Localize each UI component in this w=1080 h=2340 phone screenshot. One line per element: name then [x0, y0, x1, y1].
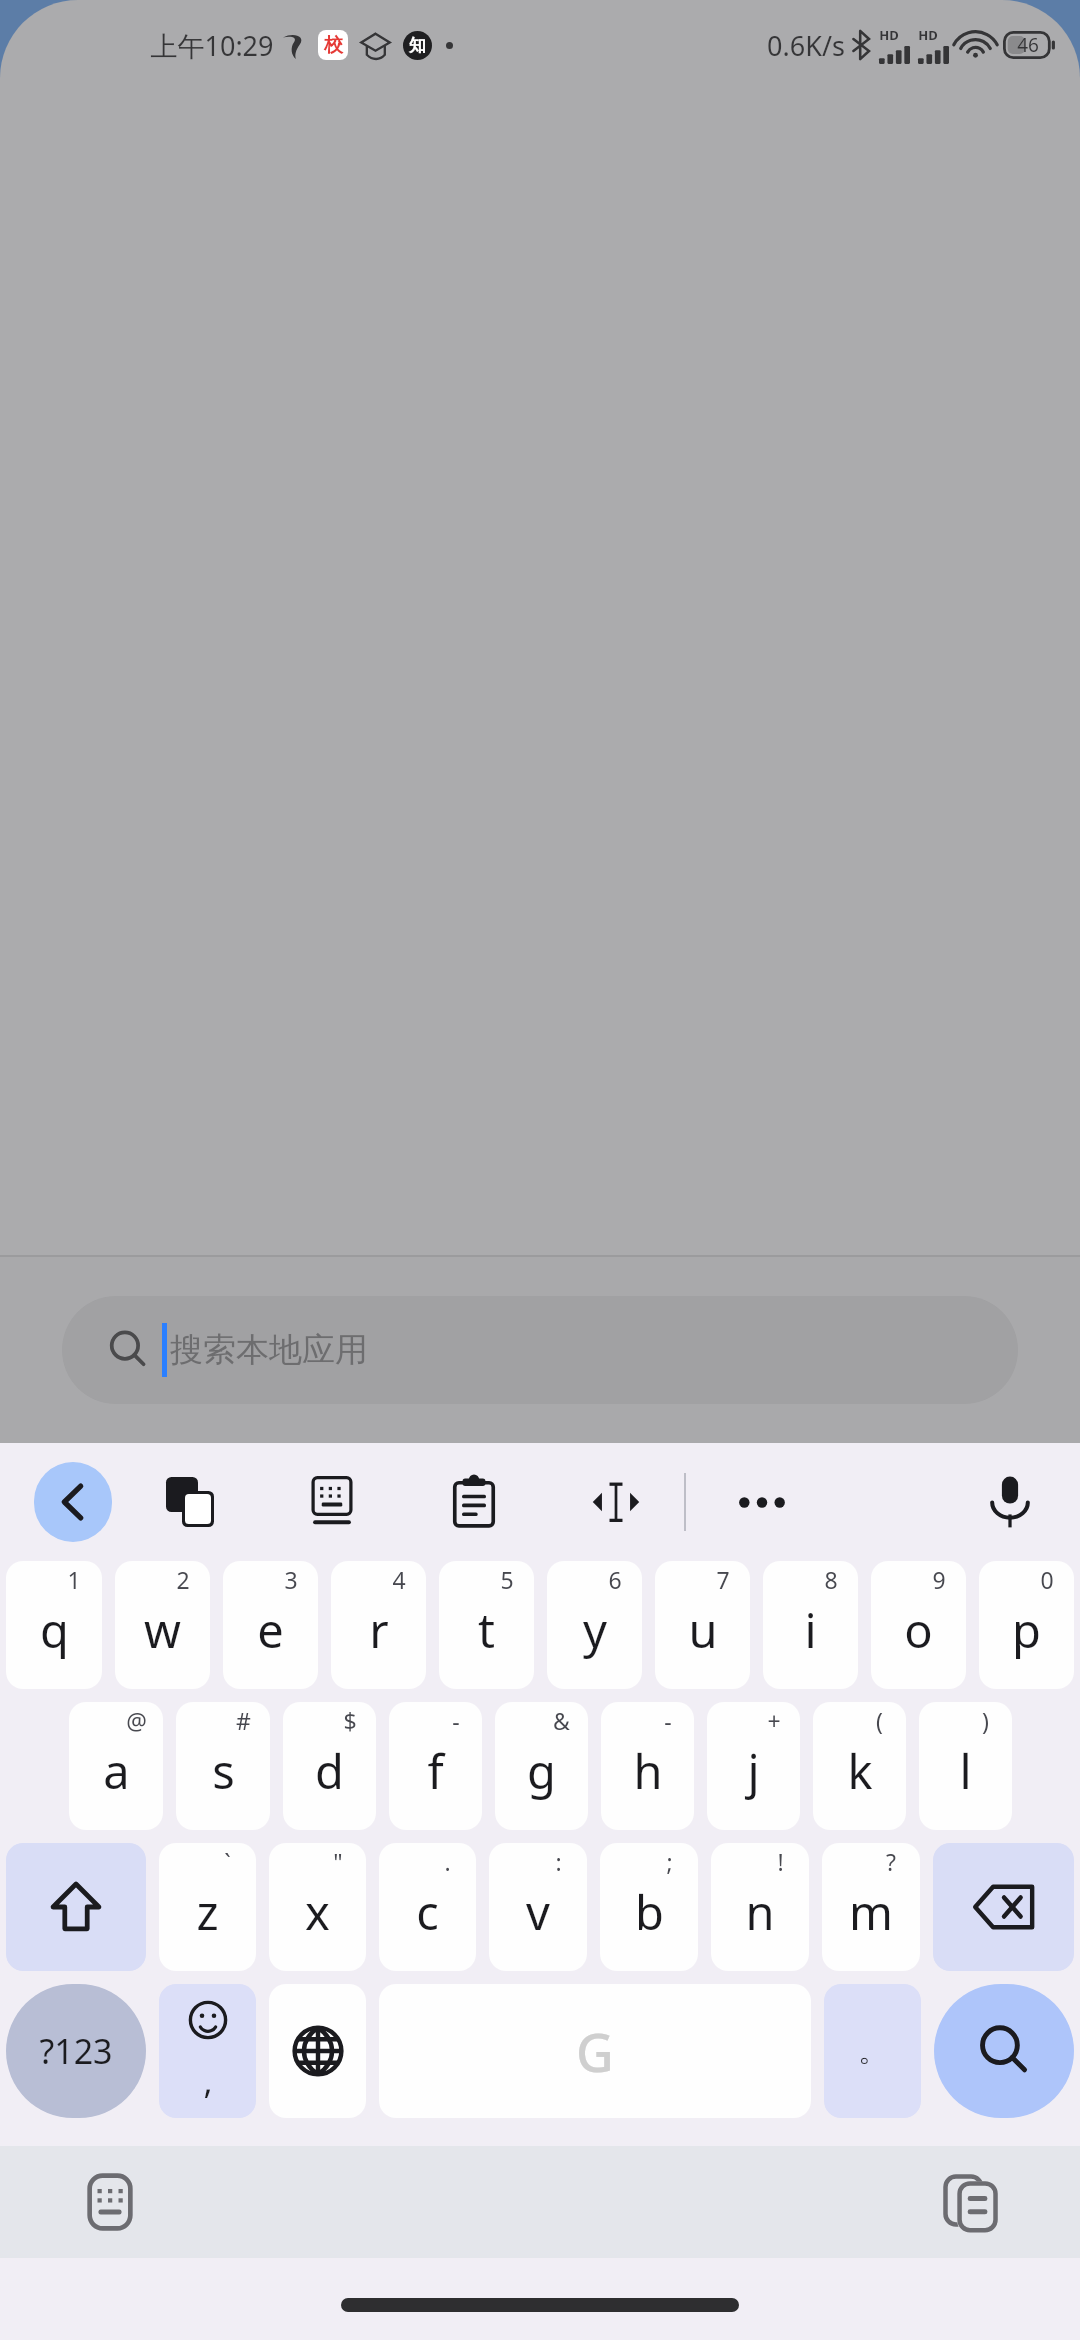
button[interactable]: 8: [763, 1561, 858, 1689]
staticText: ;: [666, 1846, 673, 1877]
staticText: $: [343, 1705, 357, 1736]
button[interactable]: Clipboard: [440, 1468, 508, 1536]
staticText: #: [236, 1705, 251, 1736]
staticText: -: [664, 1705, 672, 1736]
staticText: 5: [500, 1564, 514, 1595]
staticText: p: [1012, 1598, 1041, 1662]
button[interactable]: 3: [223, 1561, 318, 1689]
staticText: 1: [67, 1564, 81, 1595]
button[interactable]: 。: [824, 1984, 921, 2118]
button[interactable]: `: [159, 1843, 256, 1971]
staticText: 6: [608, 1564, 622, 1595]
staticText: @: [126, 1705, 147, 1736]
staticText: 9: [932, 1564, 946, 1595]
staticText: a: [103, 1739, 130, 1803]
staticText: 知: [409, 35, 426, 56]
staticText: 46: [1017, 32, 1039, 58]
button[interactable]: 7: [655, 1561, 750, 1689]
staticText: 2: [176, 1564, 190, 1595]
staticText: y: [583, 1598, 607, 1662]
button[interactable]: -: [601, 1702, 694, 1830]
button[interactable]: +: [707, 1702, 800, 1830]
staticText: m: [849, 1880, 893, 1944]
button[interactable]: &: [495, 1702, 588, 1830]
button[interactable]: Switch keyboard: [78, 2170, 142, 2234]
staticText: ,: [203, 2058, 213, 2104]
staticText: +: [767, 1705, 781, 1736]
button[interactable]: Shift: [6, 1843, 146, 1971]
staticText: -: [452, 1705, 460, 1736]
staticText: d: [315, 1739, 344, 1803]
staticText: z: [196, 1880, 219, 1944]
button[interactable]: Backspace: [933, 1843, 1074, 1971]
staticText: 校: [324, 33, 343, 57]
staticText: 8: [824, 1564, 838, 1595]
staticText: 0: [1040, 1564, 1054, 1595]
button[interactable]: Space: [379, 1984, 811, 2118]
staticText: e: [257, 1598, 284, 1662]
staticText: 。: [858, 2032, 888, 2070]
staticText: x: [305, 1880, 330, 1944]
button[interactable]: ?: [822, 1843, 920, 1971]
staticText: G: [576, 2016, 614, 2087]
staticText: ): [982, 1705, 989, 1736]
staticText: !: [777, 1846, 784, 1877]
button[interactable]: Translate: [156, 1468, 224, 1536]
button[interactable]: ;: [600, 1843, 698, 1971]
staticText: b: [635, 1880, 664, 1944]
staticText: 7: [716, 1564, 730, 1595]
button[interactable]: 搜索本地应用: [62, 1296, 1018, 1404]
button[interactable]: 2: [115, 1561, 210, 1689]
button[interactable]: Text editing: [582, 1468, 650, 1536]
staticText: q: [40, 1598, 69, 1662]
staticText: l: [959, 1739, 972, 1803]
button[interactable]: More options: [728, 1468, 796, 1536]
button[interactable]: @: [69, 1702, 163, 1830]
button[interactable]: :: [489, 1843, 587, 1971]
button[interactable]: ): [919, 1702, 1012, 1830]
staticText: ?123: [39, 2028, 113, 2074]
button[interactable]: Search: [934, 1984, 1074, 2118]
staticText: t: [478, 1598, 495, 1662]
button[interactable]: !: [711, 1843, 809, 1971]
staticText: n: [745, 1880, 775, 1944]
button[interactable]: #: [176, 1702, 270, 1830]
button[interactable]: Switch language: [269, 1984, 366, 2118]
staticText: HD: [879, 26, 899, 44]
staticText: r: [369, 1598, 389, 1662]
staticText: u: [688, 1598, 718, 1662]
staticText: ?: [886, 1846, 896, 1877]
staticText: .: [444, 1846, 451, 1877]
button[interactable]: Voice input: [974, 1466, 1046, 1538]
button[interactable]: -: [389, 1702, 482, 1830]
button[interactable]: 1: [6, 1561, 102, 1689]
staticText: j: [747, 1739, 760, 1803]
staticText: 上午10:29: [150, 27, 274, 64]
button[interactable]: ": [269, 1843, 366, 1971]
button[interactable]: 9: [871, 1561, 966, 1689]
staticText: c: [416, 1880, 439, 1944]
button[interactable]: 4: [331, 1561, 426, 1689]
button[interactable]: Recent apps: [938, 2170, 1002, 2234]
staticText: g: [527, 1739, 556, 1803]
staticText: :: [555, 1846, 562, 1877]
button[interactable]: 5: [439, 1561, 534, 1689]
staticText: 3: [284, 1564, 298, 1595]
button[interactable]: Back: [34, 1462, 112, 1542]
staticText: i: [804, 1598, 817, 1662]
staticText: (: [876, 1705, 883, 1736]
button[interactable]: Keyboard settings: [298, 1468, 366, 1536]
button[interactable]: $: [283, 1702, 376, 1830]
staticText: `: [224, 1846, 231, 1877]
button[interactable]: ?123: [6, 1984, 146, 2118]
button[interactable]: Emoji: [159, 1984, 256, 2118]
staticText: 0.6K/s: [767, 27, 845, 64]
staticText: k: [847, 1739, 873, 1803]
button[interactable]: 6: [547, 1561, 642, 1689]
staticText: o: [904, 1598, 933, 1662]
button[interactable]: .: [379, 1843, 476, 1971]
button[interactable]: 0: [979, 1561, 1074, 1689]
staticText: f: [427, 1739, 444, 1803]
staticText: &: [553, 1705, 570, 1736]
button[interactable]: (: [813, 1702, 906, 1830]
